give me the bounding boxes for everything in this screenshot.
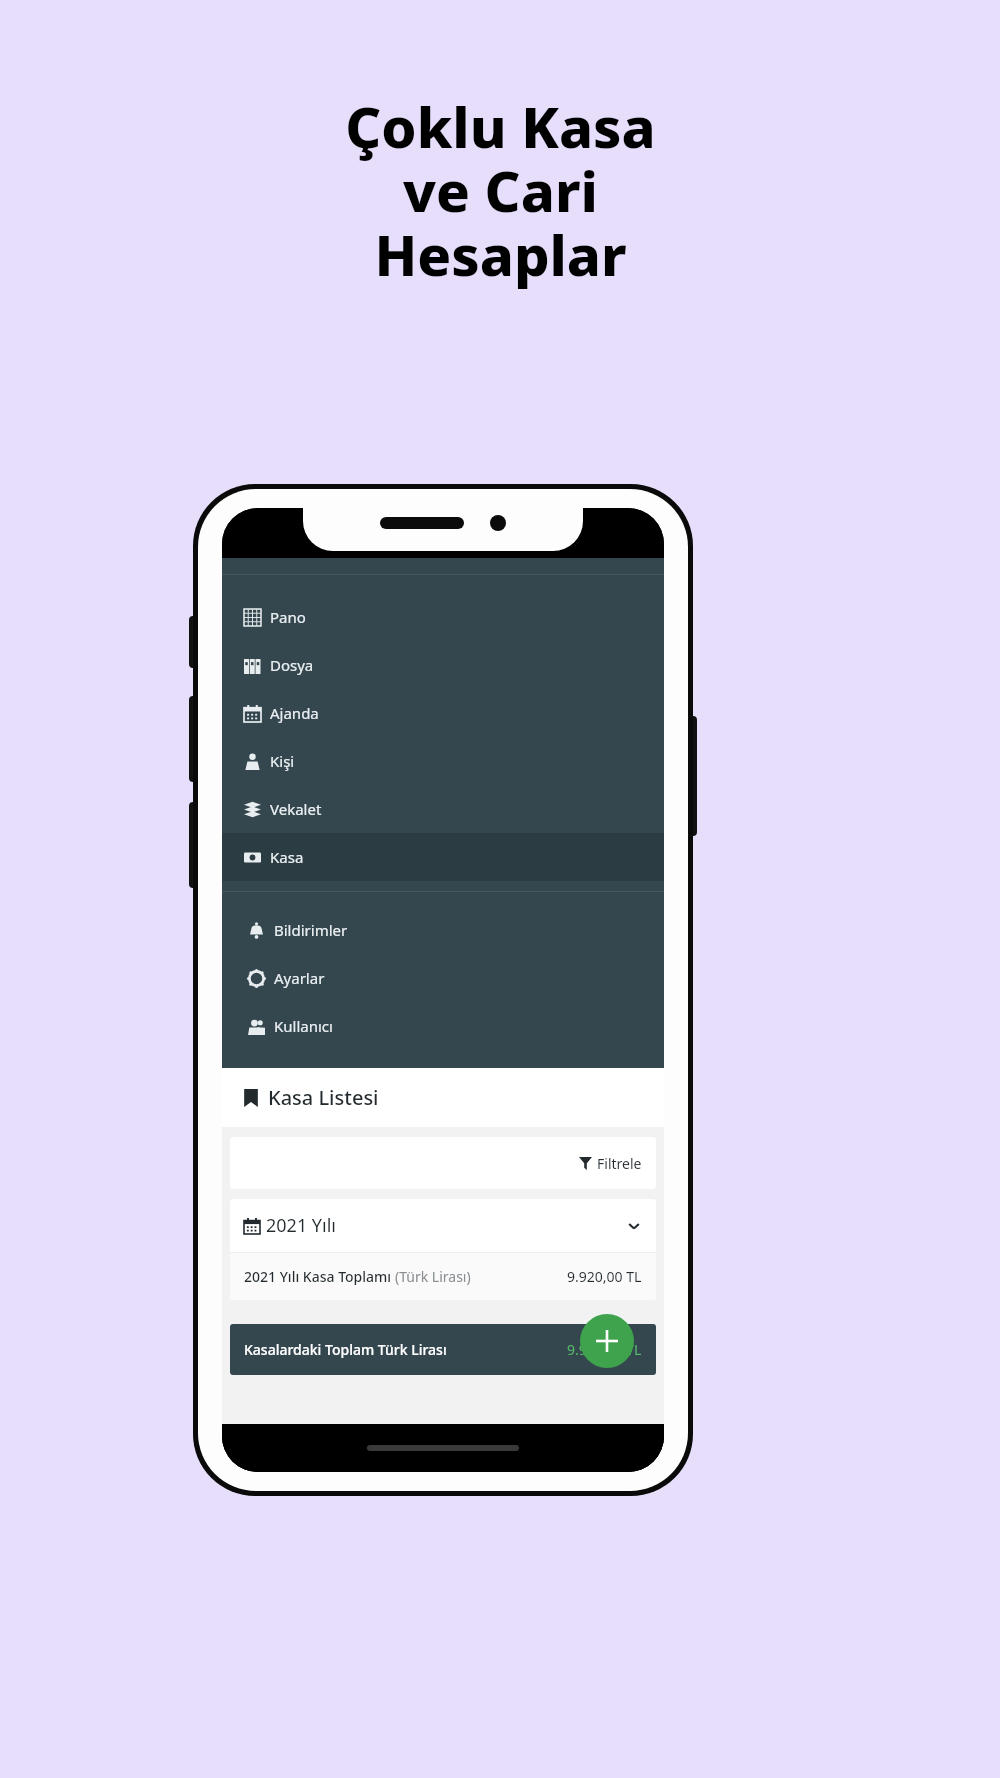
staticText: Kasalardaki Toplam Türk Lirası (244, 1340, 447, 1359)
staticText: 9.920,00 TL (567, 1267, 642, 1286)
button[interactable]: Vekalet (222, 785, 664, 833)
button[interactable]: Pano (222, 593, 664, 641)
staticText: Kişi (270, 751, 295, 771)
button[interactable]: Bildirimler (222, 906, 664, 954)
staticText: Ayarlar (274, 968, 325, 988)
button[interactable]: Ayarlar (222, 954, 664, 1002)
staticText: Pano (270, 607, 306, 627)
staticText: 9.920,00 TL (567, 1340, 642, 1359)
button[interactable]: Kasa (222, 833, 664, 881)
staticText: Bildirimler (274, 920, 348, 940)
staticText: Kasa (270, 847, 304, 867)
staticText: (Türk Lirası) (395, 1267, 471, 1286)
staticText: 2021 Yılı Kasa Toplamı (244, 1267, 395, 1286)
button[interactable]: Ajanda (222, 689, 664, 737)
button[interactable]: Dosya (222, 641, 664, 689)
button[interactable]: Kullanıcı (222, 1002, 664, 1050)
button[interactable]: Filtrele (230, 1137, 656, 1189)
button[interactable]: Kasalardaki Toplam Türk Lirası (230, 1324, 656, 1375)
staticText: Kullanıcı (274, 1016, 333, 1036)
staticText: Vekalet (270, 799, 322, 819)
button[interactable]: 2021 Yılı (230, 1199, 656, 1252)
button[interactable]: Kişi (222, 737, 664, 785)
staticText: Filtrele (597, 1154, 642, 1173)
staticText: Ajanda (270, 703, 319, 723)
staticText: Çoklu Kasa ve Cari Hesaplar (345, 88, 656, 293)
button[interactable]: Ekle (580, 1314, 634, 1368)
staticText: 2021 Yılı (266, 1213, 336, 1238)
staticText: Kasa Listesi (268, 1084, 379, 1111)
staticText: Dosya (270, 655, 314, 675)
